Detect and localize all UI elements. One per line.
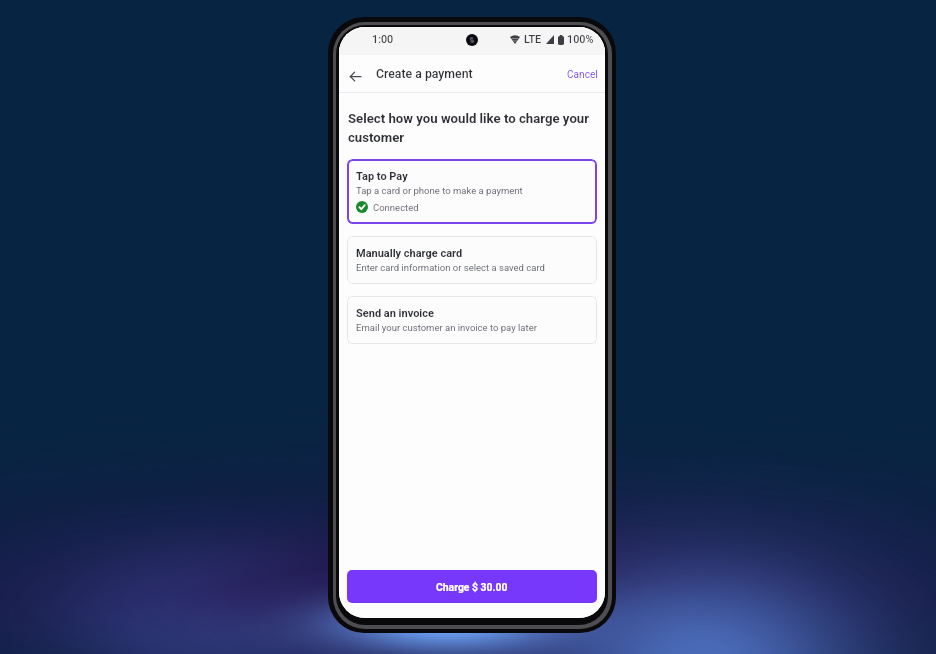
button[interactable]: Manually charge card <box>347 236 597 284</box>
button[interactable]: Tap to Pay <box>347 159 597 224</box>
staticText: Charge $ 30.00 <box>436 581 508 593</box>
staticText: Manually charge card <box>356 247 463 260</box>
staticText: Tap a card or phone to make a payment <box>356 185 523 196</box>
button[interactable]: Charge $ 30.00 <box>347 570 597 603</box>
button[interactable]: Back <box>344 65 366 87</box>
staticText: Enter card information or select a saved… <box>356 262 545 273</box>
staticText: 100% <box>567 33 594 46</box>
staticText: Email your customer an invoice to pay la… <box>356 322 537 333</box>
button[interactable]: Send an invoice <box>347 296 597 344</box>
staticText: Send an invoice <box>356 307 434 320</box>
staticText: Tap to Pay <box>356 170 408 183</box>
staticText: 1:00 <box>372 33 394 46</box>
button[interactable]: Cancel <box>558 62 605 86</box>
staticText: Cancel <box>567 69 598 81</box>
staticText: Connected <box>373 202 419 213</box>
staticText: Create a payment <box>376 67 473 81</box>
staticText: LTE <box>524 33 542 46</box>
staticText: Select how you would like to charge your… <box>348 111 593 145</box>
